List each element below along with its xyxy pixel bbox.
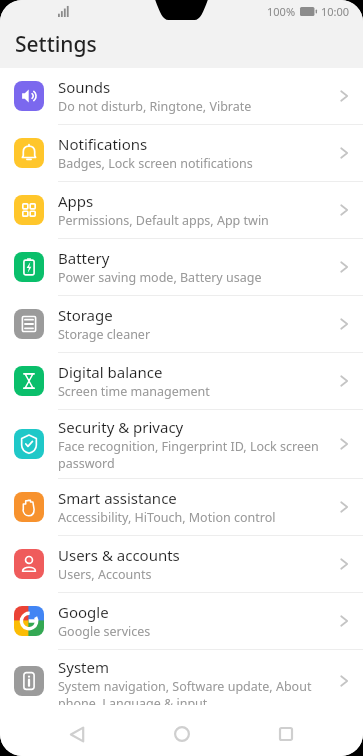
staticText: Face recognition, Fingerprint ID, Lock s… [58,438,319,471]
button[interactable]: Apps [0,182,363,239]
staticText: Users, Accounts [58,566,152,583]
button[interactable]: Google [0,593,363,650]
staticText: Smart assistance [58,488,177,508]
staticText: Apps [58,191,94,211]
staticText: Google services [58,623,151,640]
staticText: 100% [267,4,296,19]
staticText: Accessibility, HiTouch, Motion control [58,509,276,526]
staticText: Users & accounts [58,545,180,565]
staticText: Notifications [58,134,148,154]
button[interactable]: Sounds [0,68,363,125]
staticText: Battery [58,248,110,268]
staticText: Google [58,602,109,622]
staticText: System [58,657,109,677]
staticText: Permissions, Default apps, App twin [58,212,269,229]
staticText: Do not disturb, Ringtone, Vibrate [58,98,252,115]
staticText: Storage cleaner [58,326,151,343]
button[interactable]: Security & privacy [0,410,363,479]
button[interactable]: Notifications [0,125,363,182]
button[interactable]: Users & accounts [0,536,363,593]
staticText: 10:00 [321,4,350,19]
staticText: Storage [58,305,113,325]
button[interactable]: System [0,650,363,712]
staticText: Screen time management [58,383,210,400]
button[interactable]: Home [155,712,209,756]
button[interactable]: Recent apps [259,712,313,756]
staticText: Settings [15,30,97,59]
button[interactable]: Storage [0,296,363,353]
button[interactable]: Smart assistance [0,479,363,536]
staticText: Security & privacy [58,417,184,437]
staticText: Sounds [58,77,111,97]
button[interactable]: Digital balance [0,353,363,410]
staticText: Digital balance [58,362,163,382]
staticText: Power saving mode, Battery usage [58,269,262,286]
button[interactable]: Battery [0,239,363,296]
button[interactable]: Back [50,712,104,756]
staticText: Badges, Lock screen notifications [58,155,253,172]
staticText: System navigation, Software update, Abou… [58,678,312,705]
